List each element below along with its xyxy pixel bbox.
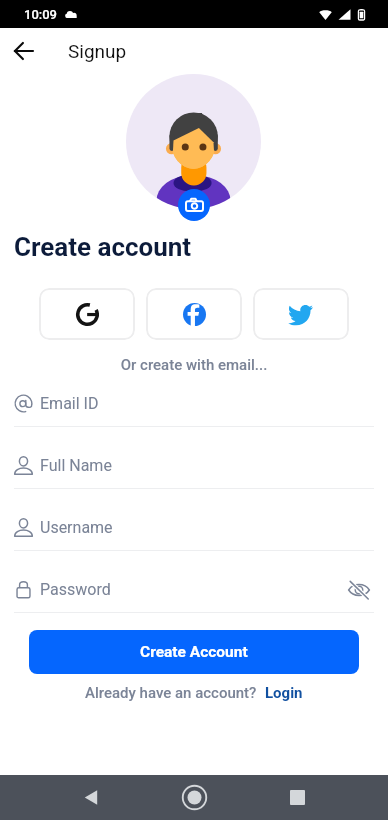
button[interactable]: Full Name: [14, 443, 374, 488]
button[interactable]: Email ID: [14, 381, 374, 426]
staticText: Create account: [14, 232, 192, 262]
staticText: Username: [40, 518, 113, 537]
staticText: Already have an account?: [85, 684, 257, 702]
staticText: Signup: [68, 40, 127, 62]
button[interactable]: Password: [14, 567, 374, 612]
staticText: Email ID: [40, 394, 99, 413]
button[interactable]: Back: [68, 775, 114, 820]
button[interactable]: Recent apps: [274, 775, 320, 820]
staticText: Or create with email...: [0, 356, 388, 374]
button[interactable]: Sign up with Twitter: [253, 288, 349, 340]
button[interactable]: Sign up with Google: [39, 288, 135, 340]
button[interactable]: Login: [265, 684, 303, 702]
button[interactable]: Back: [1, 28, 46, 73]
button[interactable]: Sign up with Facebook: [146, 288, 242, 340]
staticText: Password: [40, 580, 111, 599]
staticText: Full Name: [40, 456, 112, 475]
button[interactable]: Create Account: [29, 630, 359, 674]
button[interactable]: Show password: [344, 575, 374, 605]
staticText: 10:09: [24, 7, 57, 22]
button[interactable]: Username: [14, 505, 374, 550]
button[interactable]: Home: [171, 775, 217, 820]
staticText: Login: [265, 684, 303, 702]
staticText: Create Account: [140, 643, 248, 661]
button[interactable]: Change profile photo: [178, 189, 210, 221]
